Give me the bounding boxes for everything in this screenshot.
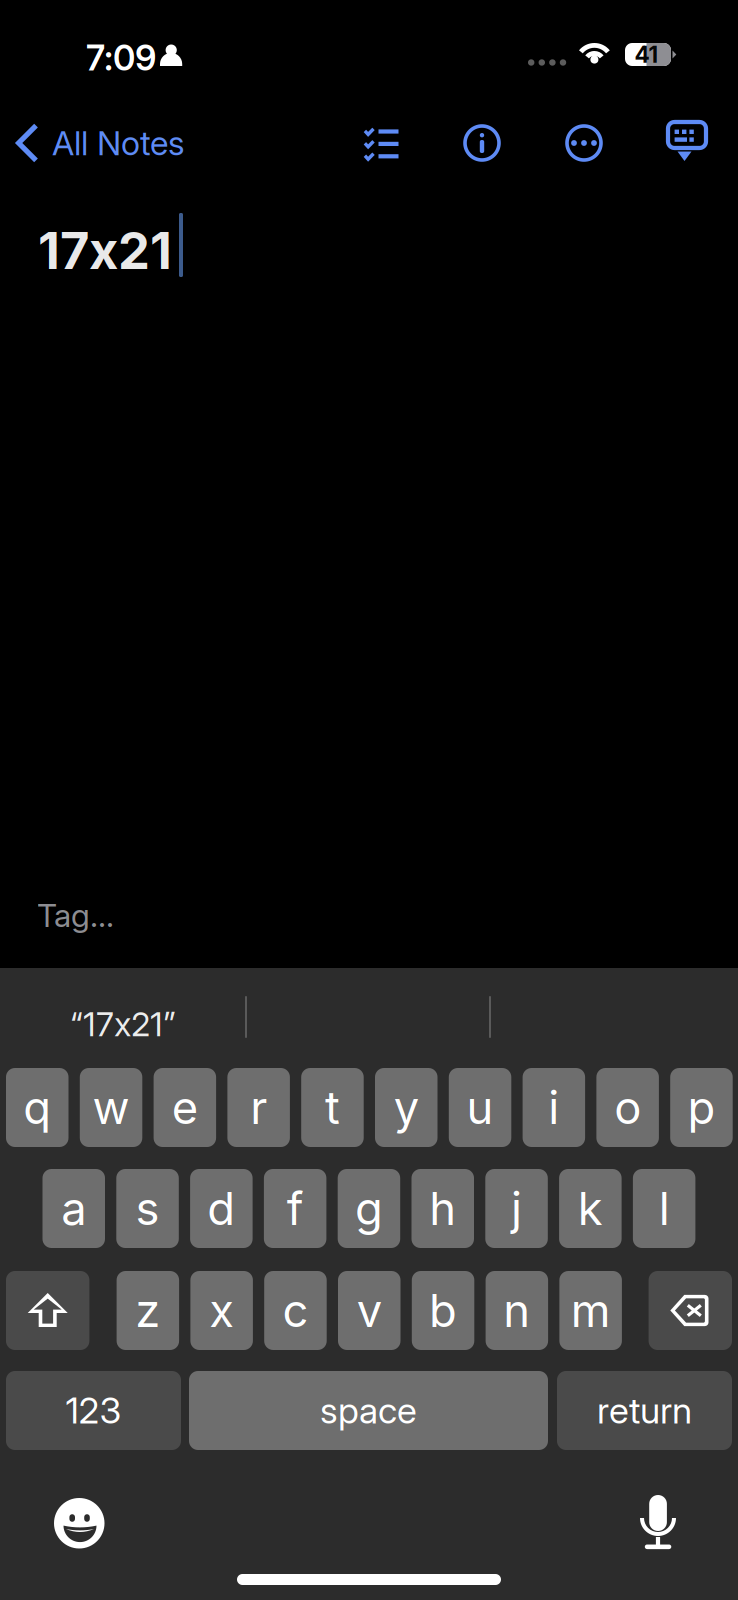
- staticText: d: [207, 1181, 235, 1236]
- staticText: p: [687, 1080, 715, 1135]
- staticText: z: [135, 1283, 160, 1338]
- button[interactable]: m: [559, 1271, 622, 1350]
- button[interactable]: j: [485, 1169, 548, 1248]
- staticText: j: [511, 1181, 522, 1236]
- button[interactable]: p: [670, 1068, 733, 1147]
- staticText: v: [357, 1283, 382, 1338]
- button[interactable]: Emoji: [54, 1498, 105, 1549]
- staticText: “17x21”: [70, 1004, 176, 1044]
- button[interactable]: u: [449, 1068, 511, 1147]
- button[interactable]: return: [557, 1371, 732, 1450]
- button[interactable]: a: [42, 1169, 105, 1248]
- button[interactable]: Shift: [6, 1271, 89, 1350]
- button[interactable]: 123: [6, 1371, 181, 1450]
- button[interactable]: r: [227, 1068, 290, 1147]
- button[interactable]: space: [189, 1371, 548, 1450]
- staticText: 41: [634, 41, 658, 68]
- staticText: c: [282, 1283, 308, 1338]
- button[interactable]: More: [556, 120, 612, 166]
- button[interactable]: Dictate: [640, 1495, 676, 1550]
- staticText: r: [250, 1080, 267, 1135]
- staticText: w: [92, 1080, 129, 1135]
- staticText: 17x21: [38, 220, 172, 281]
- staticText: s: [136, 1181, 160, 1236]
- staticText: y: [394, 1080, 419, 1135]
- button[interactable]: c: [264, 1271, 327, 1350]
- staticText: o: [614, 1080, 641, 1135]
- button[interactable]: f: [264, 1169, 326, 1248]
- button[interactable]: l: [633, 1169, 695, 1248]
- staticText: f: [287, 1181, 304, 1236]
- button[interactable]: All Notes: [16, 120, 216, 166]
- staticText: t: [325, 1080, 340, 1135]
- button[interactable]: d: [190, 1169, 253, 1248]
- button[interactable]: Hide Keyboard: [659, 120, 715, 166]
- staticText: Tag...: [37, 896, 114, 935]
- button[interactable]: Delete: [649, 1271, 732, 1350]
- staticText: l: [659, 1181, 670, 1236]
- staticText: k: [578, 1181, 603, 1236]
- button[interactable]: Checklist: [353, 120, 409, 166]
- staticText: u: [466, 1080, 493, 1135]
- staticText: All Notes: [52, 123, 185, 163]
- staticText: b: [429, 1283, 457, 1338]
- staticText: h: [429, 1181, 456, 1236]
- staticText: x: [209, 1283, 234, 1338]
- button[interactable]: i: [523, 1068, 585, 1147]
- button[interactable]: y: [375, 1068, 437, 1147]
- staticText: a: [61, 1181, 86, 1236]
- staticText: m: [571, 1283, 611, 1338]
- button[interactable]: t: [301, 1068, 364, 1147]
- staticText: g: [355, 1181, 383, 1236]
- button[interactable]: w: [80, 1068, 142, 1147]
- staticText: e: [172, 1080, 198, 1135]
- staticText: q: [23, 1080, 51, 1135]
- button[interactable]: n: [486, 1271, 548, 1350]
- button[interactable]: Info: [454, 120, 510, 166]
- button[interactable]: z: [117, 1271, 179, 1350]
- button[interactable]: s: [116, 1169, 179, 1248]
- button[interactable]: o: [596, 1068, 659, 1147]
- button[interactable]: h: [411, 1169, 474, 1248]
- button[interactable]: v: [338, 1271, 400, 1350]
- button[interactable]: x: [190, 1271, 253, 1350]
- button[interactable]: q: [6, 1068, 68, 1147]
- staticText: return: [597, 1389, 692, 1432]
- button[interactable]: e: [154, 1068, 216, 1147]
- button[interactable]: k: [559, 1169, 622, 1248]
- button[interactable]: g: [338, 1169, 400, 1248]
- staticText: 123: [65, 1389, 121, 1432]
- staticText: i: [548, 1080, 559, 1135]
- staticText: 7:09: [86, 37, 156, 79]
- button[interactable]: b: [412, 1271, 474, 1350]
- staticText: space: [320, 1389, 417, 1432]
- staticText: n: [503, 1283, 530, 1338]
